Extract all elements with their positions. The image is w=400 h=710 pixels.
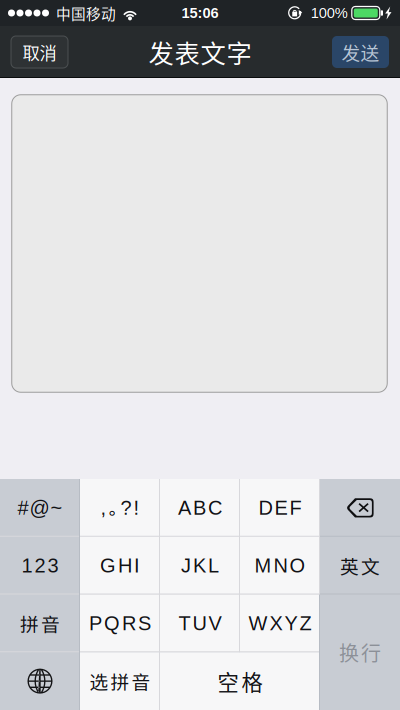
staticText: JKL (181, 554, 219, 577)
button[interactable]: 换行 (320, 594, 400, 710)
button[interactable]: 发送 (332, 36, 389, 68)
staticText: GHI (100, 554, 140, 577)
staticText: 空格 (217, 666, 262, 697)
button[interactable]: WXYZ (240, 594, 320, 652)
staticText: DEF (258, 497, 301, 519)
staticText: ABC (178, 497, 222, 519)
button[interactable]: Delete (320, 479, 400, 537)
button[interactable]: Switch keyboard (0, 652, 80, 710)
button[interactable]: MNO (240, 537, 320, 595)
staticText: TUV (178, 612, 221, 634)
staticText: MNO (254, 554, 305, 577)
staticText: 发表文字 (148, 34, 251, 70)
staticText: 发送 (341, 38, 379, 65)
button[interactable]: JKL (160, 537, 240, 595)
button[interactable]: 英文 (320, 537, 400, 595)
button[interactable]: ,｡?! (80, 479, 160, 537)
staticText: 取消 (22, 39, 56, 65)
button[interactable]: GHI (80, 537, 160, 595)
button[interactable]: #@~ (0, 479, 80, 537)
button[interactable]: PQRS (80, 594, 160, 652)
button[interactable]: TUV (160, 594, 240, 652)
staticText: #@~ (17, 497, 62, 519)
staticText: 英文 (340, 552, 380, 579)
button[interactable]: DEF (240, 479, 320, 537)
staticText: 100% (311, 5, 348, 21)
staticText: 15:06 (181, 5, 218, 21)
button[interactable]: ABC (160, 479, 240, 537)
button[interactable]: 123 (0, 537, 80, 595)
button[interactable]: 选拼音 (80, 652, 160, 710)
staticText: 123 (21, 554, 58, 577)
staticText: 选拼音 (89, 668, 150, 695)
staticText: 拼音 (20, 610, 60, 637)
button[interactable]: 取消 (11, 36, 68, 68)
staticText: WXYZ (248, 612, 311, 634)
staticText: ,｡?! (100, 497, 139, 519)
staticText: PQRS (89, 612, 151, 634)
button[interactable]: 空格 (160, 652, 320, 710)
button[interactable]: 拼音 (0, 594, 80, 652)
staticText: 中国移动 (56, 2, 116, 24)
staticText: 换行 (339, 638, 381, 667)
